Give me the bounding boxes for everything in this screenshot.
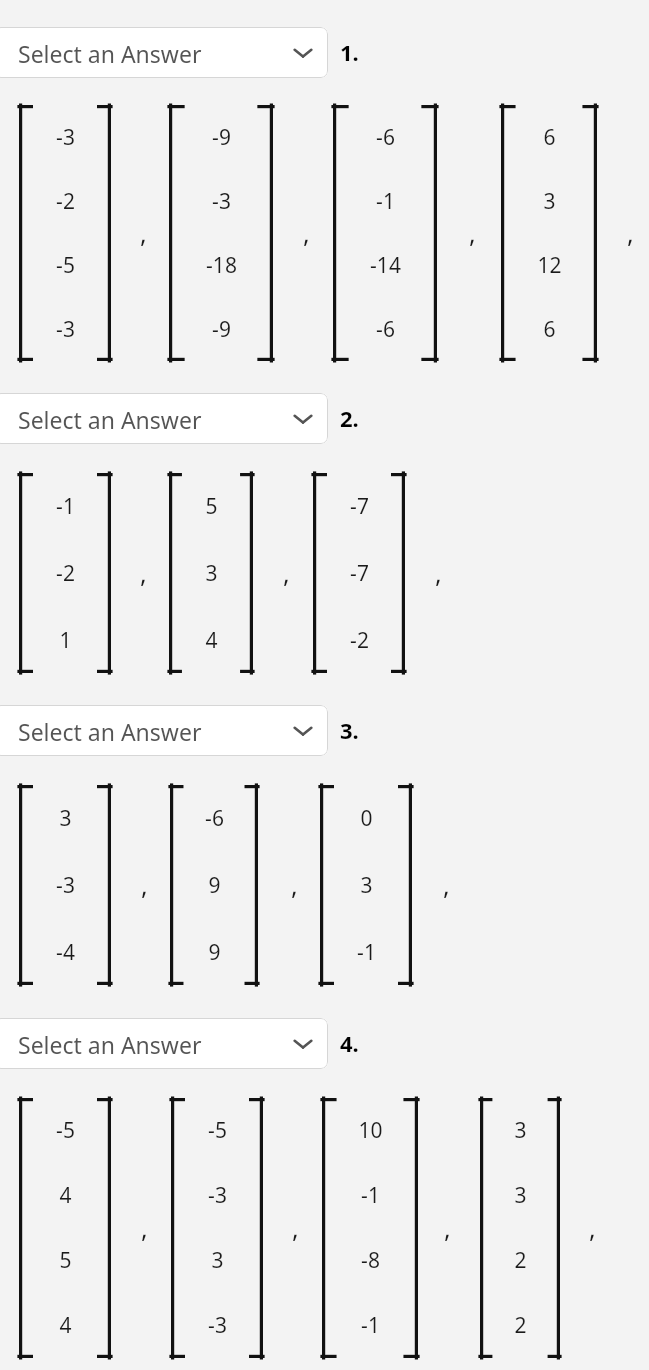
staticText: 5 <box>59 1246 72 1275</box>
staticText: 3 <box>514 1181 527 1210</box>
staticText: 3 <box>211 1246 224 1275</box>
staticText: -1 <box>361 1181 380 1210</box>
staticText: , <box>469 216 476 250</box>
staticText: 12 <box>537 251 562 280</box>
staticText: -1 <box>376 187 395 216</box>
staticText: -3 <box>212 187 231 216</box>
staticText: 5 <box>205 492 218 521</box>
staticText: -1 <box>357 938 376 967</box>
staticText: -9 <box>212 315 231 344</box>
staticText: , <box>291 868 298 902</box>
staticText: , <box>303 216 310 250</box>
staticText: -3 <box>208 1311 227 1340</box>
staticText: 3 <box>514 1116 527 1145</box>
staticText: Select an Answer <box>18 716 202 747</box>
staticText: -1 <box>56 492 75 521</box>
staticText: , <box>141 1211 148 1245</box>
staticText: -5 <box>208 1116 227 1145</box>
staticText: -1 <box>361 1311 380 1340</box>
button[interactable]: Select an Answer <box>0 705 328 756</box>
staticText: 4. <box>340 1028 359 1058</box>
other: Open answer list <box>292 411 314 427</box>
button[interactable]: Select an Answer <box>0 27 328 78</box>
staticText: -6 <box>376 315 395 344</box>
staticText: -5 <box>56 1116 75 1145</box>
staticText: -4 <box>56 938 75 967</box>
staticText: -3 <box>56 315 75 344</box>
staticText: 3 <box>360 871 373 900</box>
staticText: -7 <box>350 559 369 588</box>
staticText: 6 <box>543 315 556 344</box>
staticText: 2 <box>514 1246 527 1275</box>
staticText: -6 <box>205 804 224 833</box>
staticText: , <box>292 1211 299 1245</box>
other: Open answer list <box>292 45 314 61</box>
staticText: 3 <box>59 804 72 833</box>
staticText: -6 <box>376 123 395 152</box>
staticText: 4 <box>205 626 218 655</box>
staticText: 1 <box>59 626 72 655</box>
staticText: 1. <box>340 37 359 67</box>
staticText: -3 <box>56 871 75 900</box>
staticText: 2 <box>514 1311 527 1340</box>
button[interactable]: Select an Answer <box>0 393 328 444</box>
staticText: , <box>435 556 442 590</box>
staticText: Select an Answer <box>18 404 202 435</box>
staticText: 3. <box>340 715 359 745</box>
staticText: , <box>627 216 634 250</box>
staticText: -2 <box>350 626 369 655</box>
staticText: -3 <box>56 123 75 152</box>
staticText: -3 <box>208 1181 227 1210</box>
staticText: 6 <box>543 123 556 152</box>
staticText: -14 <box>370 251 401 280</box>
staticText: Select an Answer <box>18 38 202 69</box>
staticText: , <box>589 1211 596 1245</box>
staticText: , <box>444 1211 451 1245</box>
other: Open answer list <box>292 723 314 739</box>
staticText: -2 <box>56 187 75 216</box>
staticText: 10 <box>358 1116 383 1145</box>
staticText: , <box>141 868 148 902</box>
staticText: , <box>140 216 147 250</box>
button[interactable]: Select an Answer <box>0 1018 328 1069</box>
staticText: 4 <box>59 1311 72 1340</box>
staticText: -5 <box>56 251 75 280</box>
staticText: 3 <box>205 559 218 588</box>
other: Open answer list <box>292 1036 314 1052</box>
staticText: 4 <box>59 1181 72 1210</box>
staticText: 9 <box>208 938 221 967</box>
staticText: -18 <box>206 251 237 280</box>
staticText: -9 <box>212 123 231 152</box>
staticText: Select an Answer <box>18 1029 202 1060</box>
staticText: -8 <box>361 1246 380 1275</box>
staticText: -2 <box>56 559 75 588</box>
staticText: , <box>140 556 147 590</box>
staticText: -7 <box>350 492 369 521</box>
staticText: 9 <box>208 871 221 900</box>
staticText: 0 <box>360 804 373 833</box>
staticText: 3 <box>543 187 556 216</box>
staticText: , <box>443 868 450 902</box>
staticText: , <box>283 556 290 590</box>
staticText: 2. <box>340 403 359 433</box>
